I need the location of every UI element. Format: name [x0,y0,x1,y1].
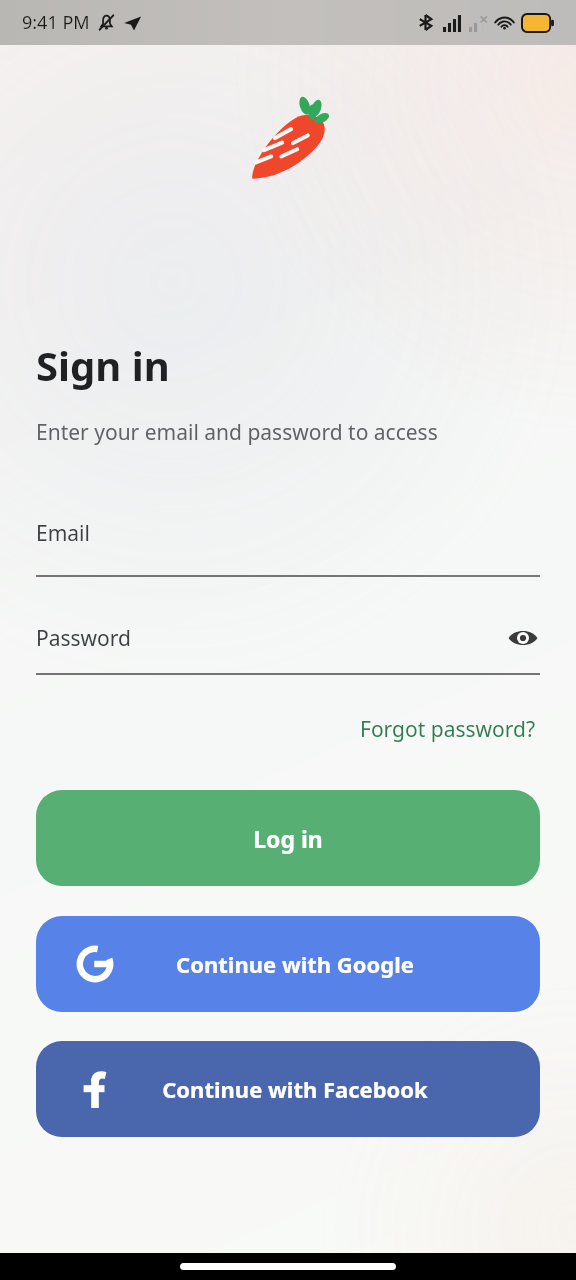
button[interactable]: Continue with Google [36,916,540,1012]
staticText: Forgot password? [360,715,536,744]
button[interactable]: Email [0,519,576,577]
button[interactable]: Show password [506,621,540,655]
staticText: Continue with Google [176,949,414,979]
staticText: Enter your email and password to access [36,418,438,447]
staticText: Password [36,624,131,653]
button[interactable]: Continue with Facebook [36,1041,540,1137]
button[interactable]: Forgot password? [356,711,540,748]
staticText: Sign in [36,338,170,392]
other: Carrot logo [246,96,330,180]
staticText: Log in [253,823,323,854]
button[interactable]: Log in [36,790,540,886]
staticText: Email [36,519,90,548]
button[interactable]: Password [0,621,576,675]
staticText: Continue with Facebook [162,1074,428,1104]
staticText: 9:41 PM [22,10,90,35]
